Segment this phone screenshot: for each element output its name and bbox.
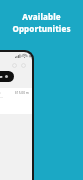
button[interactable]: Search bbox=[12, 63, 17, 68]
staticText: Enrollment Grant bbox=[0, 90, 1, 95]
button[interactable]: Enrollment Grant bbox=[0, 88, 32, 114]
button[interactable]: Profile bbox=[21, 63, 26, 68]
staticText: $15.00 m bbox=[15, 91, 29, 95]
button[interactable]: More bbox=[0, 71, 14, 82]
staticText: Available bbox=[22, 11, 61, 22]
staticText: More bbox=[0, 74, 3, 79]
staticText: Opportunities bbox=[12, 23, 71, 34]
